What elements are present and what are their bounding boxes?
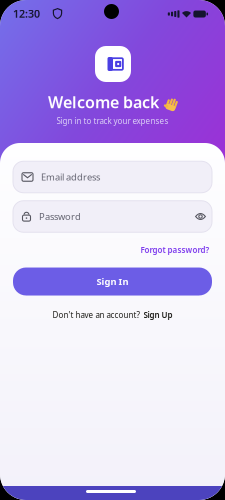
button[interactable]: Email address <box>13 161 212 193</box>
button[interactable]: Don't have an account? Sign Up <box>52 310 172 320</box>
button[interactable]: Sign In <box>13 267 212 295</box>
staticText: Welcome back <box>48 91 159 113</box>
staticText: Sign In <box>96 275 128 288</box>
button[interactable]: Password <box>13 201 212 232</box>
button[interactable]: Show password <box>190 206 210 226</box>
staticText: Sign in to track your expenses <box>56 116 168 126</box>
staticText: Email address <box>41 171 100 183</box>
staticText: 12:30 <box>13 7 40 21</box>
staticText: Password <box>39 210 81 223</box>
staticText: Don't have an account? Sign Up <box>52 310 172 320</box>
button[interactable]: Forgot password? <box>140 245 209 255</box>
staticText: Forgot password? <box>140 245 209 255</box>
